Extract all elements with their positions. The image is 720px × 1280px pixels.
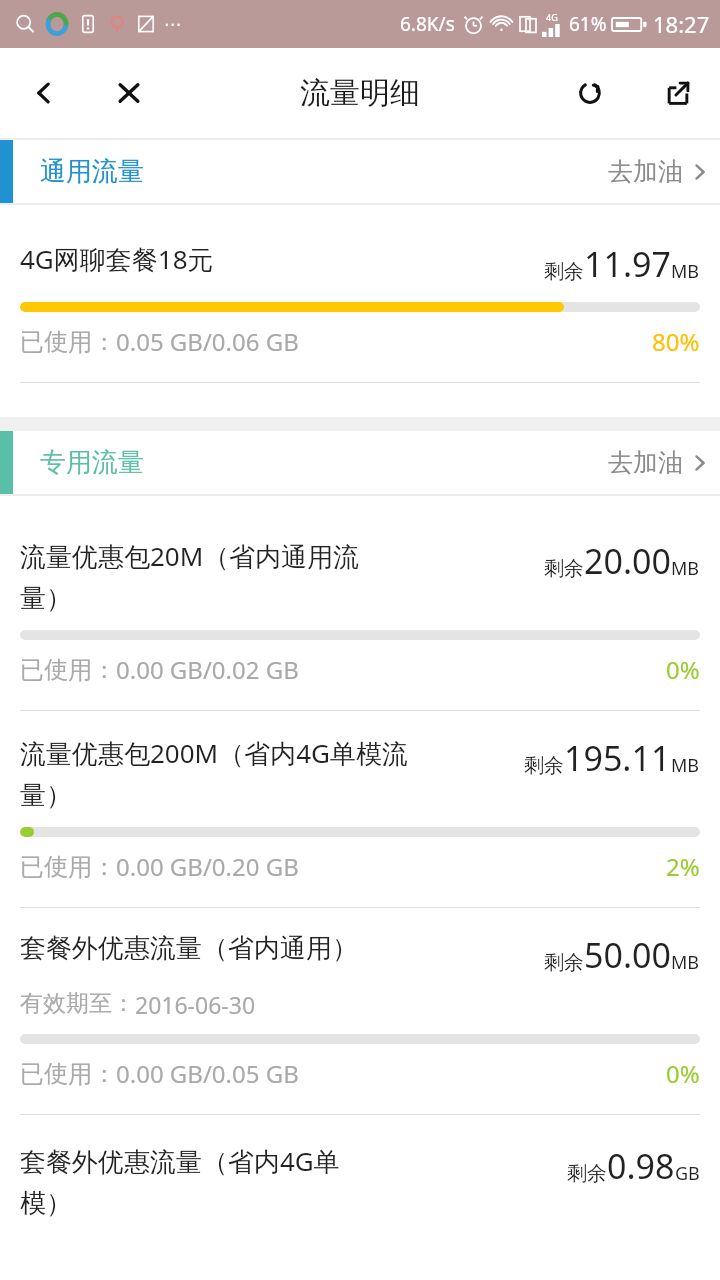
staticText: 0.00 GB/0.20 GB <box>116 850 299 883</box>
staticText: 剩余 <box>544 950 584 975</box>
staticText: 0.05 GB/0.06 GB <box>116 325 299 358</box>
staticText: 11.97 <box>584 241 671 287</box>
staticText: 2% <box>666 850 700 883</box>
staticText: 6.8K/s <box>400 11 455 37</box>
staticText: 有效期至： <box>20 989 135 1018</box>
staticText: 流量优惠包200M（省内4G单模流量） <box>20 735 410 812</box>
staticText: 剩余 <box>567 1161 607 1186</box>
staticText: 0% <box>666 653 700 686</box>
button[interactable]: Close <box>107 71 151 115</box>
staticText: 专用流量 <box>40 446 144 479</box>
staticText: 流量明细 <box>300 74 420 112</box>
staticText: 去加油 <box>608 156 683 187</box>
button[interactable]: 4G网聊套餐18元 <box>0 205 720 383</box>
staticText: 剩余 <box>544 556 584 581</box>
staticText: 80% <box>652 325 700 358</box>
staticText: 套餐外优惠流量（省内通用） <box>20 932 410 965</box>
button[interactable]: 套餐外优惠流量（省内通用） <box>0 908 720 1115</box>
staticText: MB <box>671 259 700 284</box>
staticText: 0.00 GB/0.02 GB <box>116 653 299 686</box>
button[interactable]: Back <box>22 71 66 115</box>
staticText: 20.00 <box>584 538 671 584</box>
staticText: 套餐外优惠流量（省内4G单模） <box>20 1143 390 1220</box>
button[interactable]: 专用流量 <box>0 431 720 494</box>
staticText: 去加油 <box>608 447 683 478</box>
button[interactable]: Refresh <box>568 71 612 115</box>
button[interactable]: 套餐外优惠流量（省内4G单模） <box>0 1115 720 1220</box>
staticText: 已使用： <box>20 655 116 685</box>
staticText: 18:27 <box>653 9 710 39</box>
staticText: 4G网聊套餐18元 <box>20 241 410 277</box>
staticText: 0.00 GB/0.05 GB <box>116 1057 299 1090</box>
button[interactable]: 流量优惠包20M（省内通用流量） <box>0 496 720 711</box>
staticText: 4G <box>546 11 558 23</box>
staticText: 剩余 <box>524 753 564 778</box>
staticText: 通用流量 <box>40 155 144 188</box>
staticText: GB <box>675 1161 700 1186</box>
staticText: MB <box>671 950 700 975</box>
staticText: 195.11 <box>564 735 671 781</box>
staticText: 流量优惠包20M（省内通用流量） <box>20 538 410 615</box>
staticText: MB <box>671 753 700 778</box>
staticText: 61% <box>569 11 607 37</box>
staticText: 剩余 <box>544 259 584 284</box>
button[interactable]: 流量优惠包200M（省内4G单模流量） <box>0 711 720 908</box>
staticText: 2016-06-30 <box>135 989 256 1020</box>
staticText: ⋯ <box>164 14 181 34</box>
staticText: 已使用： <box>20 327 116 357</box>
staticText: 已使用： <box>20 1059 116 1089</box>
button[interactable]: Share <box>656 71 700 115</box>
button[interactable]: 通用流量 <box>0 140 720 203</box>
staticText: 50.00 <box>584 932 671 978</box>
staticText: 已使用： <box>20 852 116 882</box>
staticText: 0% <box>666 1057 700 1090</box>
staticText: MB <box>671 556 700 581</box>
staticText: 0.98 <box>607 1143 675 1189</box>
